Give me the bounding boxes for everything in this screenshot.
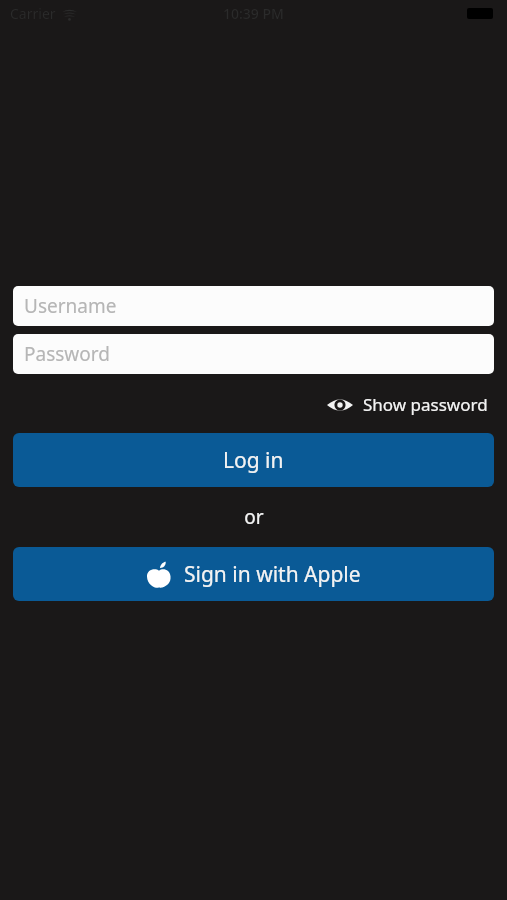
staticText: Log in bbox=[223, 446, 284, 475]
staticText: 10:39 PM bbox=[223, 4, 284, 23]
staticText: Sign in with Apple bbox=[184, 560, 361, 589]
button[interactable]: Sign in with Apple bbox=[13, 547, 494, 601]
other: Show password bbox=[327, 396, 353, 414]
staticText: Password bbox=[24, 341, 110, 367]
staticText: Carrier bbox=[10, 4, 56, 23]
button[interactable]: Username bbox=[13, 286, 494, 326]
staticText: Username bbox=[24, 293, 117, 319]
button[interactable]: Log in bbox=[13, 433, 494, 487]
staticText: Show password bbox=[363, 393, 488, 416]
staticText: or bbox=[244, 504, 264, 530]
button[interactable]: Password bbox=[13, 334, 494, 374]
button[interactable]: Show password bbox=[321, 388, 494, 421]
